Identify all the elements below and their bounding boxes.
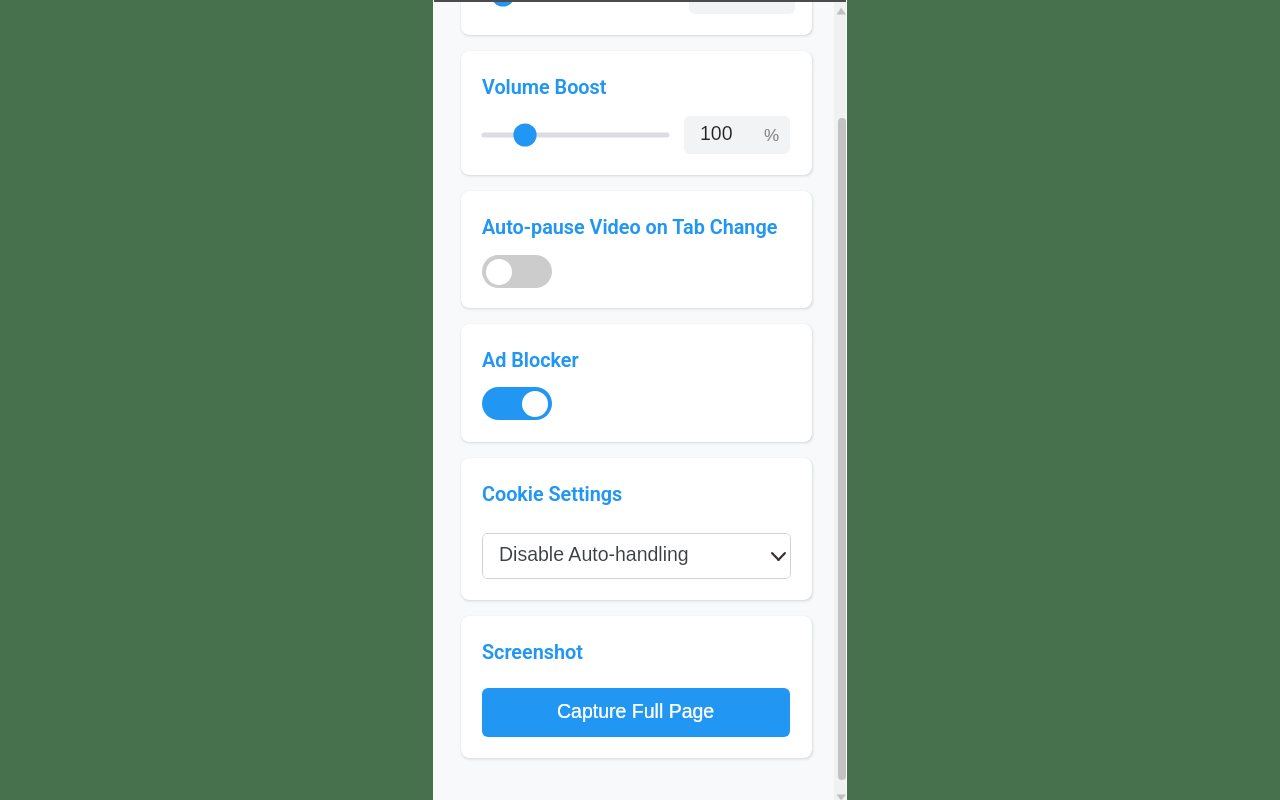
staticText: Volume Boost	[482, 76, 607, 99]
staticText: Capture Full Page	[557, 700, 715, 722]
button[interactable]: Level slider	[482, 0, 669, 9]
staticText: 100	[705, 0, 738, 4]
staticText: %	[764, 126, 780, 145]
staticText: 100	[700, 122, 733, 144]
staticText: Auto-pause Video on Tab Change	[482, 216, 778, 239]
button[interactable]: 100	[684, 116, 790, 154]
staticText: %	[769, 0, 785, 5]
staticText: Ad Blocker	[482, 349, 579, 372]
button[interactable]: 100	[689, 0, 795, 14]
button[interactable]: Disable Auto-handling	[482, 533, 791, 579]
button[interactable]: Disabled toggle	[482, 255, 552, 288]
button[interactable]: Capture Full Page	[482, 688, 790, 737]
staticText: Disable Auto-handling	[499, 543, 689, 565]
button[interactable]: Scroll down	[834, 785, 846, 800]
staticText: Screenshot	[482, 641, 583, 664]
staticText: Cookie Settings	[482, 483, 623, 506]
button[interactable]: Scroll up	[834, 2, 846, 19]
button[interactable]: Enabled toggle	[482, 387, 552, 420]
button[interactable]: Level slider	[482, 121, 669, 149]
